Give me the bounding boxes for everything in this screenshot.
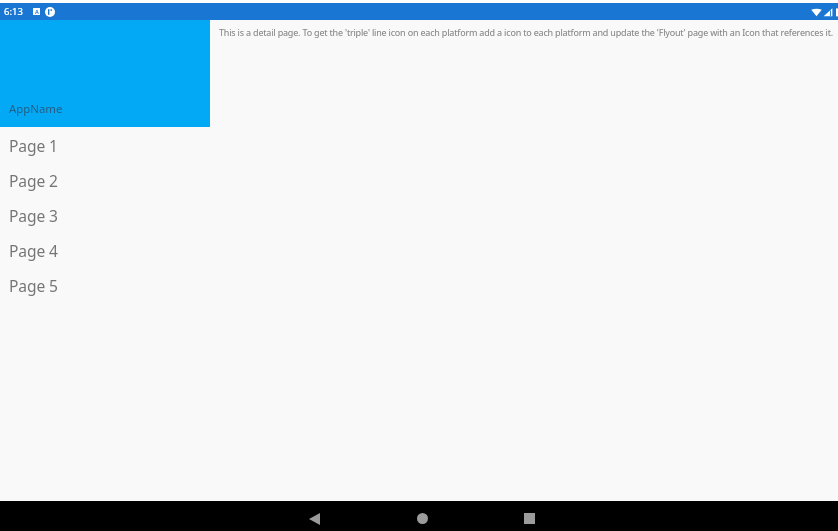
staticText: Page 2 [9,170,58,191]
button[interactable]: Page 4 [0,233,210,268]
staticText: Page 4 [9,240,58,261]
staticText: Page 1 [9,135,58,156]
button[interactable]: Home [404,506,440,530]
staticText: A [35,8,39,15]
button[interactable]: Page 5 [0,268,210,303]
staticText: This is a detail page. To get the 'tripl… [219,26,833,38]
staticText: AppName [9,101,63,117]
staticText: 6:13 [4,5,23,18]
staticText: Page 5 [9,275,58,296]
button[interactable]: Back [296,507,332,531]
button[interactable]: Page 2 [0,163,210,198]
staticText: Page 3 [9,205,58,226]
button[interactable]: Page 1 [0,128,210,163]
button[interactable]: Page 3 [0,198,210,233]
button[interactable]: Recents [511,506,547,530]
